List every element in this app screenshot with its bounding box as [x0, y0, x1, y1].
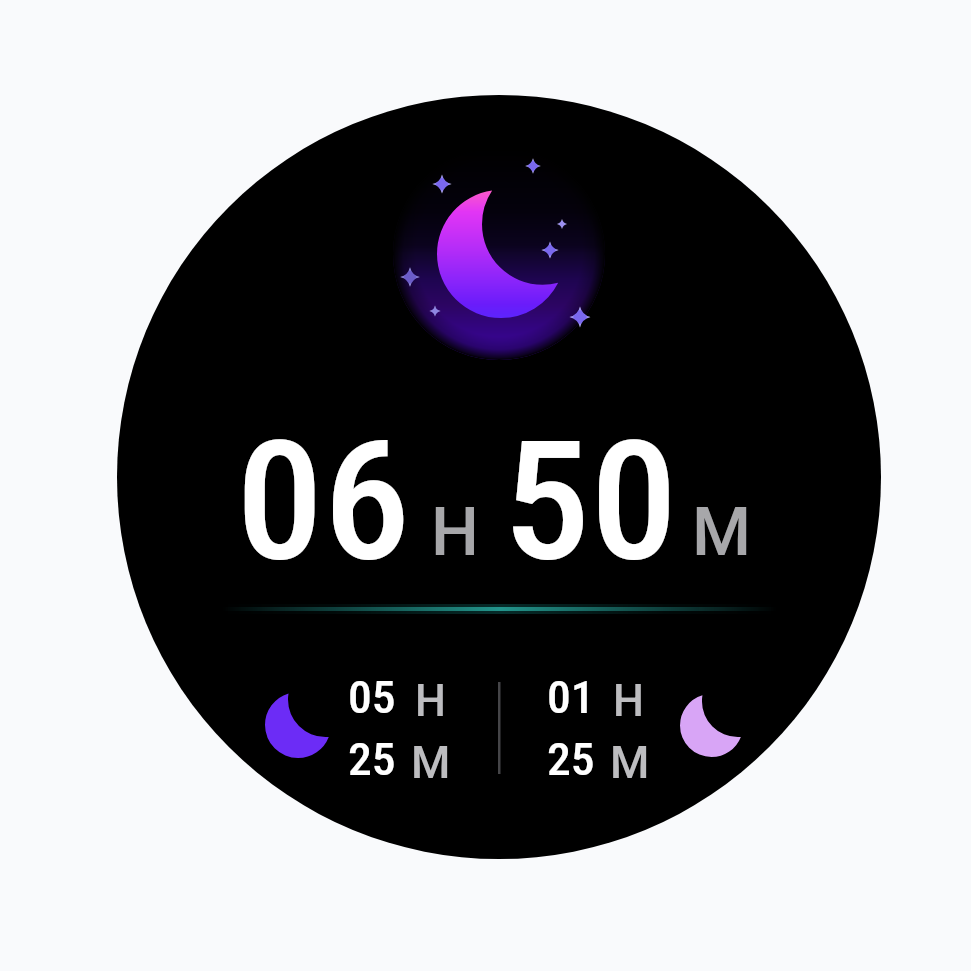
staticText: M — [692, 492, 752, 571]
staticText: 05 — [348, 671, 396, 724]
staticText: M — [610, 736, 650, 789]
staticText: H — [415, 676, 446, 727]
button[interactable]: Sleep summary — [117, 95, 881, 859]
staticText: 25 — [547, 733, 595, 786]
staticText: 25 — [348, 733, 396, 786]
button[interactable]: Deep sleep — [265, 692, 331, 758]
staticText: H — [613, 676, 644, 727]
staticText: 06 — [236, 404, 411, 598]
staticText: 01 — [547, 671, 595, 724]
button[interactable]: Light sleep — [680, 694, 743, 757]
staticText: 50 — [503, 404, 678, 598]
staticText: M — [411, 736, 451, 789]
staticText: H — [431, 492, 479, 571]
